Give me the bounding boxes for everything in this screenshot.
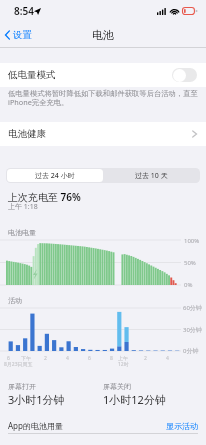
staticText: 显示活动 [166, 421, 198, 431]
staticText: 下午 [21, 355, 31, 361]
staticText: 8月23日周五 [4, 361, 33, 368]
button[interactable]: 显示活动 [166, 421, 198, 431]
staticText: 过去 10 天 [135, 171, 168, 181]
staticText: 上午 [118, 355, 128, 361]
staticText: 6 [88, 355, 91, 362]
staticText: 过去 24 小时 [35, 171, 75, 181]
staticText: 2 [144, 355, 147, 362]
staticText: 电池 [92, 28, 114, 42]
staticText: 60分钟 [183, 304, 202, 312]
staticText: 低电量模式 [8, 69, 56, 81]
staticText: 30分钟 [183, 326, 202, 334]
staticText: 4 [166, 355, 169, 362]
staticText: 6 [7, 355, 10, 362]
staticText: App的电池用量 [8, 420, 63, 431]
staticText: 3小时1分钟 [8, 392, 65, 407]
button[interactable]: 低电量模式 [0, 63, 206, 87]
staticText: 活动 [8, 296, 22, 305]
staticText: 屏幕打开 [8, 382, 36, 391]
staticText: 100% [184, 237, 200, 245]
button[interactable]: 设置 [0, 29, 38, 41]
staticText: 2 [44, 355, 47, 362]
button[interactable]: 电池健康 [0, 122, 206, 146]
staticText: 50% [184, 259, 196, 267]
staticText: 8:54 [14, 4, 34, 18]
staticText: 上午 1:18 [8, 202, 38, 212]
staticText: 低电量模式将暂时降低如下载和邮件获取等后台活动，直至iPhone完全充电。 [8, 89, 199, 108]
staticText: 电池健康 [8, 128, 46, 140]
staticText: 12时 [118, 361, 129, 368]
staticText: 0分钟 [183, 347, 199, 355]
button[interactable]: 过去 24 小时 [7, 169, 103, 182]
button[interactable]: 过去 10 天 [103, 169, 199, 182]
staticText: 0% [184, 281, 193, 289]
staticText: 4 [66, 355, 69, 362]
staticText: 上次充电至 76% [8, 190, 81, 204]
staticText: 8 [110, 355, 113, 362]
staticText: 电池电量 [8, 228, 36, 237]
staticText: 1小时12分钟 [103, 392, 166, 407]
staticText: 屏幕关闭 [103, 382, 131, 391]
staticText: 设置 [13, 29, 32, 41]
